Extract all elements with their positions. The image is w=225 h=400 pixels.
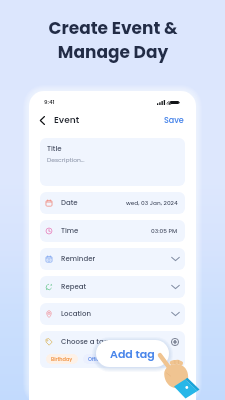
staticText: wed, 03 Jan, 2024 [126, 199, 178, 207]
staticText: Add tag [110, 346, 155, 361]
staticText: Time [61, 226, 79, 236]
button[interactable]: Save [163, 113, 185, 128]
staticText: Create Event & Manage Day [48, 16, 178, 64]
staticText: Event [54, 114, 80, 127]
button[interactable]: Time [40, 220, 185, 242]
button[interactable]: Birthday [46, 354, 78, 364]
staticText: Save [164, 115, 184, 126]
button[interactable]: Back [35, 113, 49, 127]
button[interactable]: Add tag [96, 340, 169, 367]
staticText: Title [47, 144, 62, 154]
staticText: Description... [47, 156, 85, 164]
staticText: Reminder [61, 254, 96, 264]
button[interactable]: Location [40, 303, 185, 325]
staticText: Location [61, 309, 91, 319]
staticText: Choose a tag [61, 337, 109, 347]
button[interactable]: Add tag [170, 337, 180, 347]
staticText: 9:41 [44, 98, 55, 106]
button[interactable]: Office [83, 354, 108, 364]
staticText: Office [88, 356, 103, 363]
staticText: Birthday [51, 356, 73, 363]
staticText: 03:05 PM [151, 227, 178, 235]
button[interactable]: Repeat [40, 276, 185, 298]
button[interactable]: Reminder [40, 248, 185, 270]
button[interactable]: Date [40, 192, 185, 214]
staticText: Date [61, 198, 78, 208]
staticText: Repeat [61, 282, 87, 292]
button[interactable]: Title [40, 138, 185, 186]
button[interactable]: Choose a tag [40, 331, 185, 368]
